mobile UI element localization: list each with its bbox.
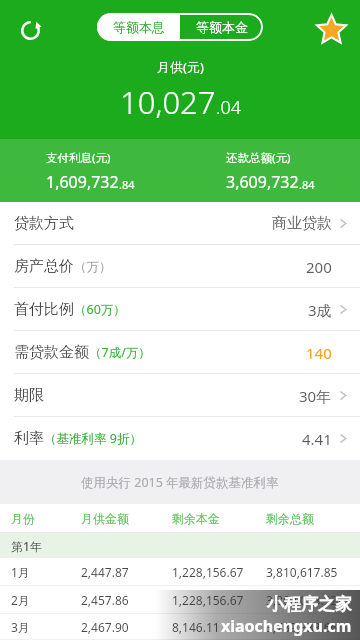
- button[interactable]: 等额本金: [180, 13, 263, 41]
- button[interactable]: 1月: [0, 558, 360, 586]
- button[interactable]: 2月: [0, 586, 360, 614]
- staticText: 30年: [299, 386, 332, 406]
- staticText: 第1年: [11, 538, 42, 554]
- button[interactable]: 首付比例: [0, 288, 360, 331]
- staticText: （基准利率 9折）: [44, 430, 142, 447]
- button[interactable]: 贷款方式: [0, 202, 360, 245]
- staticText: 剩余总额: [266, 511, 314, 526]
- staticText: 1,228,156.67: [172, 592, 244, 608]
- button[interactable]: 3月: [0, 614, 360, 640]
- button[interactable]: 需贷款金额: [0, 331, 360, 374]
- staticText: 商业贷款: [272, 214, 332, 233]
- staticText: 支付利息(元): [46, 150, 111, 166]
- staticText: xiaochengxu.cm: [221, 615, 352, 637]
- staticText: 等额本息: [113, 19, 165, 35]
- staticText: 贷款方式: [14, 214, 74, 233]
- staticText: 3,810,617.85: [266, 564, 338, 580]
- staticText: 2,457.86: [81, 592, 129, 608]
- staticText: 月供金额: [81, 511, 129, 526]
- staticText: 利率: [14, 429, 44, 448]
- staticText: 3,789,333.66: [266, 619, 338, 635]
- staticText: 等额本金: [196, 19, 248, 35]
- staticText: 140: [306, 343, 332, 363]
- staticText: 8,146.11: [172, 619, 220, 635]
- staticText: （万）: [74, 259, 112, 275]
- staticText: 期限: [14, 386, 44, 405]
- staticText: 剩余本金: [172, 511, 220, 526]
- staticText: 还款总额(元): [226, 150, 291, 166]
- button[interactable]: 期限: [0, 374, 360, 417]
- button[interactable]: Favorite: [310, 8, 352, 50]
- staticText: .84: [119, 177, 135, 192]
- staticText: 200: [306, 257, 332, 277]
- staticText: 使用央行 2015 年最新贷款基准利率: [81, 474, 279, 491]
- staticText: 1,228,156.67: [172, 564, 244, 580]
- staticText: 3,609,732: [226, 171, 299, 193]
- staticText: 首付比例: [14, 300, 74, 319]
- staticText: 10,027: [120, 81, 216, 123]
- staticText: 2,447.87: [81, 564, 129, 580]
- button[interactable]: 利率: [0, 417, 360, 460]
- staticText: 3,800,003.32: [266, 592, 338, 608]
- staticText: （60万）: [74, 301, 126, 318]
- staticText: 月供(元): [157, 58, 204, 76]
- staticText: 小程序之家: [267, 594, 352, 615]
- staticText: 2,467.90: [81, 619, 129, 635]
- staticText: 4.41: [302, 429, 332, 449]
- staticText: 需贷款金额: [14, 343, 89, 362]
- staticText: .84: [299, 177, 315, 192]
- staticText: 3月: [11, 619, 30, 635]
- staticText: 月份: [11, 511, 35, 526]
- staticText: 1月: [11, 564, 30, 580]
- button[interactable]: 等额本息: [97, 13, 180, 41]
- staticText: 3成: [308, 300, 332, 320]
- staticText: （7成/万）: [89, 344, 151, 361]
- staticText: 1,609,732: [46, 171, 119, 193]
- staticText: .04: [216, 95, 241, 120]
- button[interactable]: 房产总价: [0, 245, 360, 288]
- staticText: 房产总价: [14, 257, 74, 276]
- button[interactable]: Reset: [12, 12, 48, 48]
- staticText: 2月: [11, 592, 30, 608]
